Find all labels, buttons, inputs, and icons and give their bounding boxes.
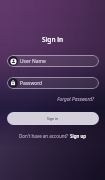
staticText: User Name [20,58,46,65]
other: User [10,58,17,65]
button[interactable]: Sign up [70,133,87,139]
button[interactable]: Password [7,77,99,89]
other: Password [10,80,16,86]
button[interactable]: Sign in [7,112,99,125]
button[interactable]: User [7,55,99,67]
staticText: Sign in [42,35,63,44]
staticText: Don't have an account? [19,133,70,139]
button[interactable]: Forgot Password? [57,96,94,102]
staticText: Password [20,80,43,87]
staticText: Sign in [47,116,59,121]
